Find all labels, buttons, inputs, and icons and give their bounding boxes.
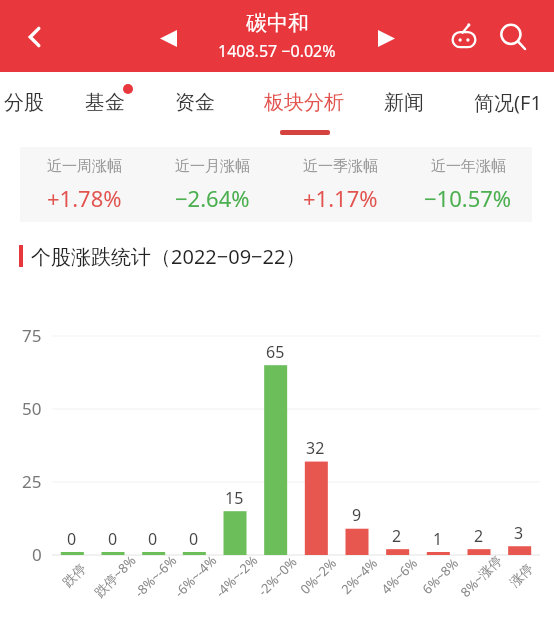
button[interactable]: 新闻 (384, 72, 424, 132)
staticText: 跌停~8% (90, 551, 140, 601)
button[interactable]: 分股 (4, 72, 44, 132)
staticText: 65 (266, 341, 285, 363)
staticText: 个股涨跌统计（2022−09−22） (31, 243, 306, 270)
staticText: -2%~0% (254, 552, 301, 600)
button[interactable]: 近一周涨幅 (20, 147, 148, 222)
staticText: +1.78% (47, 183, 122, 213)
staticText: 简况(F1 (474, 89, 542, 116)
staticText: 0 (32, 543, 42, 566)
button[interactable]: 简况(F1 (474, 72, 542, 132)
staticText: 15 (225, 487, 244, 509)
staticText: 0 (189, 528, 199, 550)
staticText: −10.57% (424, 183, 512, 213)
staticText: 近一周涨幅 (47, 157, 122, 176)
staticText: 2%~4% (337, 554, 381, 598)
staticText: 分股 (4, 90, 44, 115)
staticText: 板块分析 (264, 90, 344, 115)
staticText: 跌停 (59, 560, 89, 590)
staticText: 32 (306, 437, 325, 459)
staticText: 9 (352, 504, 362, 526)
staticText: 4%~6% (377, 554, 421, 598)
staticText: 碳中和 (246, 10, 309, 36)
staticText: 0%~2% (296, 554, 340, 598)
staticText: -6%~-4% (170, 551, 221, 601)
button[interactable]: Previous sector (150, 20, 186, 56)
button[interactable]: 近一季涨幅 (276, 147, 404, 222)
staticText: −2.64% (175, 183, 250, 213)
staticText: 2 (392, 525, 402, 547)
button[interactable]: Next sector (368, 20, 404, 56)
staticText: +1.17% (303, 183, 378, 213)
staticText: -8%~-6% (130, 551, 181, 601)
staticText: 1 (433, 528, 443, 550)
button[interactable]: 资金 (175, 72, 215, 132)
staticText: 8%~涨停 (456, 551, 506, 601)
staticText: 25 (22, 470, 42, 493)
staticText: 3 (514, 522, 524, 544)
staticText: 近一年涨幅 (431, 157, 506, 176)
staticText: 75 (22, 324, 42, 347)
staticText: 近一季涨幅 (303, 157, 378, 176)
staticText: 2 (474, 525, 484, 547)
staticText: 0 (148, 528, 158, 550)
staticText: 50 (22, 397, 42, 420)
staticText: 新闻 (384, 90, 424, 115)
staticText: 0 (108, 528, 118, 550)
button[interactable]: 基金 (85, 72, 125, 132)
button[interactable]: 近一月涨幅 (148, 147, 276, 222)
staticText: 涨停 (506, 560, 536, 590)
button[interactable]: Assistant (443, 16, 485, 58)
button[interactable]: Back (14, 16, 56, 58)
staticText: 近一月涨幅 (175, 157, 250, 176)
staticText: 资金 (175, 90, 215, 115)
staticText: 基金 (85, 90, 125, 115)
staticText: -4%~-2% (211, 551, 262, 601)
staticText: 6%~8% (418, 554, 462, 598)
button[interactable]: 板块分析 (264, 72, 344, 132)
button[interactable]: Search (492, 16, 534, 58)
button[interactable]: 近一年涨幅 (404, 147, 532, 222)
staticText: 0 (67, 528, 77, 550)
staticText: 1408.57 −0.02% (218, 40, 336, 62)
